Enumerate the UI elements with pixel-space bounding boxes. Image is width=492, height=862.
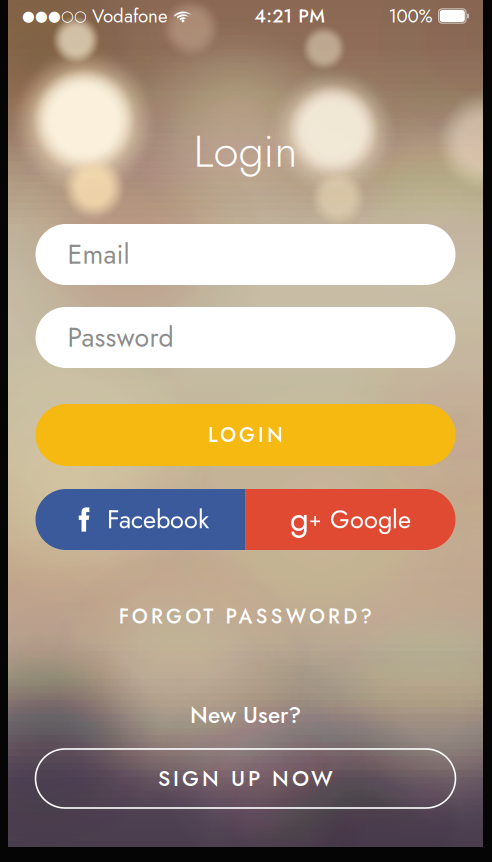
staticText: LOGIN: [208, 420, 283, 449]
staticText: SIGN UP NOW: [158, 763, 333, 794]
staticText: Login: [193, 118, 297, 184]
staticText: 100%: [389, 2, 433, 29]
staticText: Password: [67, 318, 173, 357]
staticText: Vodafone: [92, 2, 168, 29]
button[interactable]: SIGN UP NOW: [35, 749, 455, 808]
button[interactable]: FORGOT PASSWORD?: [109, 592, 382, 641]
staticText: FORGOT PASSWORD?: [119, 602, 372, 631]
button[interactable]: Email: [35, 224, 455, 285]
button[interactable]: Password: [35, 307, 455, 368]
button[interactable]: g: [245, 489, 455, 550]
staticText: New User?: [190, 699, 301, 731]
staticText: Email: [67, 235, 129, 274]
staticText: ●●●○○: [22, 7, 87, 25]
staticText: 4:21 PM: [254, 2, 325, 29]
button[interactable]: LOGIN: [35, 404, 455, 466]
staticText: Google: [330, 501, 411, 538]
staticText: Facebook: [107, 501, 209, 538]
staticText: g: [290, 495, 309, 544]
staticText: +: [309, 505, 321, 534]
button[interactable]: Facebook: [35, 489, 245, 550]
